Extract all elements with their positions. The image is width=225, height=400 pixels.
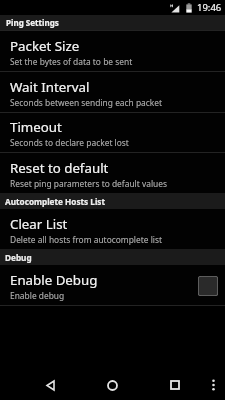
button[interactable]: More options: [202, 370, 224, 400]
button[interactable]: Clear List: [0, 209, 225, 249]
button[interactable]: Timeout: [0, 113, 225, 152]
staticText: Reset ping parameters to default values: [10, 178, 168, 189]
button[interactable]: Home: [84, 370, 140, 400]
button[interactable]: Enable Debug: [0, 265, 225, 305]
staticText: Debug: [5, 252, 32, 263]
staticText: Set the bytes of data to be sent: [10, 56, 133, 67]
button[interactable]: Packet Size: [0, 31, 225, 71]
staticText: Autocomplete Hosts List: [5, 196, 106, 207]
staticText: Seconds between sending each packet: [10, 97, 163, 108]
staticText: Enable debug: [10, 290, 65, 301]
staticText: Ping Settings: [6, 17, 59, 28]
staticText: Packet Size: [10, 37, 80, 55]
staticText: Wait Interval: [10, 78, 90, 96]
staticText: Timeout: [10, 118, 62, 136]
button[interactable]: Back: [22, 370, 78, 400]
staticText: Seconds to declare packet lost: [10, 137, 129, 148]
staticText: Enable Debug: [10, 271, 98, 289]
button[interactable]: Recent apps: [147, 370, 203, 400]
staticText: Delete all hosts from autocomplete list: [10, 234, 163, 245]
staticText: Clear List: [10, 215, 68, 233]
button[interactable]: Reset to default: [0, 153, 225, 193]
button[interactable]: Wait Interval: [0, 72, 225, 112]
button[interactable]: Enable Debug checkbox: [198, 276, 218, 296]
staticText: 19:46: [197, 1, 222, 14]
staticText: Reset to default: [10, 159, 109, 177]
